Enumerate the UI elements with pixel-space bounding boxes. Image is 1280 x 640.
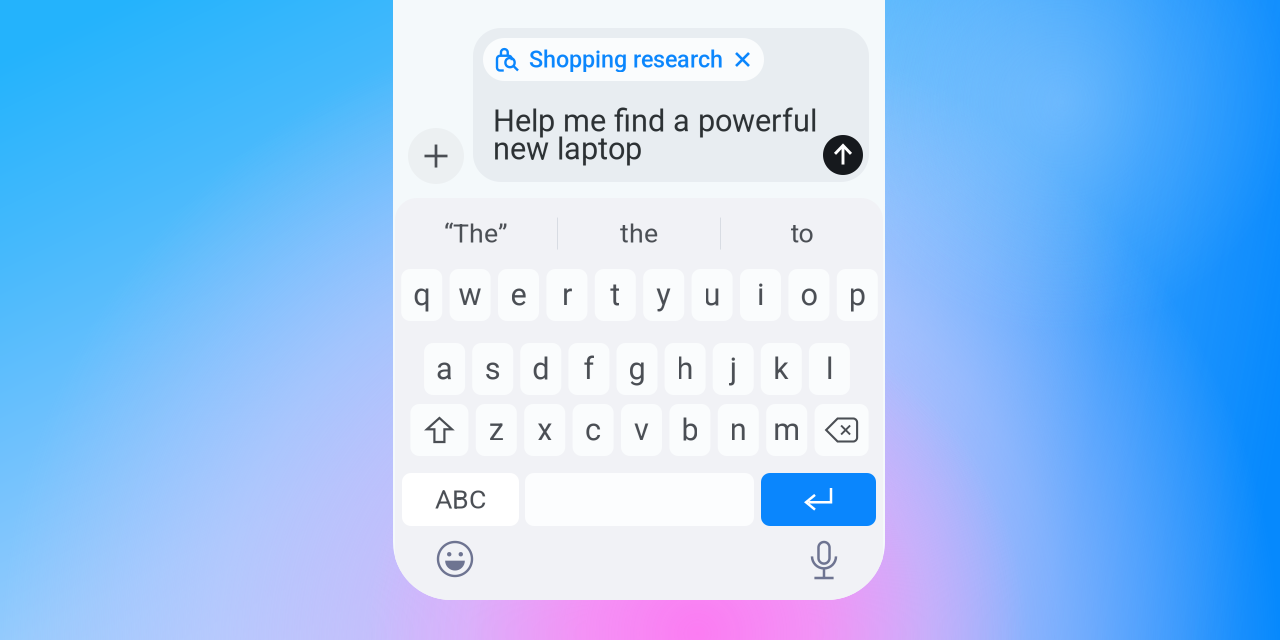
button[interactable]: Shopping research xyxy=(483,38,764,81)
staticText: e xyxy=(510,277,526,313)
button[interactable]: l xyxy=(809,343,850,395)
button[interactable]: s xyxy=(472,343,513,395)
button[interactable]: m xyxy=(766,404,807,456)
staticText: o xyxy=(800,277,817,313)
button[interactable]: e xyxy=(498,269,539,321)
staticText: Shopping research xyxy=(529,46,723,73)
staticText: z xyxy=(489,412,504,448)
staticText: new laptop xyxy=(493,131,642,167)
button[interactable]: f xyxy=(568,343,609,395)
button[interactable]: Delete xyxy=(815,404,869,456)
button[interactable]: the xyxy=(558,198,720,269)
button[interactable]: Add attachment xyxy=(408,128,464,184)
staticText: m xyxy=(773,412,800,448)
staticText: n xyxy=(730,412,747,448)
button[interactable]: z xyxy=(476,404,517,456)
staticText: t xyxy=(610,277,620,313)
button[interactable]: u xyxy=(692,269,733,321)
staticText: q xyxy=(413,277,430,313)
button[interactable]: Return xyxy=(761,473,876,526)
button[interactable]: p xyxy=(837,269,878,321)
staticText: u xyxy=(704,277,721,313)
staticText: to xyxy=(790,218,813,249)
staticText: f xyxy=(583,351,594,387)
button[interactable]: Shift xyxy=(410,404,468,456)
staticText: v xyxy=(634,412,649,448)
staticText: y xyxy=(656,277,671,313)
button[interactable]: x xyxy=(524,404,565,456)
staticText: r xyxy=(562,277,572,313)
button[interactable]: h xyxy=(665,343,706,395)
button[interactable]: d xyxy=(520,343,561,395)
staticText: w xyxy=(459,277,482,313)
staticText: h xyxy=(677,351,694,387)
button[interactable]: i xyxy=(740,269,781,321)
staticText: j xyxy=(730,351,737,387)
staticText: the xyxy=(620,218,658,249)
staticText: l xyxy=(826,351,833,387)
button[interactable]: ABC xyxy=(402,473,519,526)
button[interactable]: w xyxy=(450,269,491,321)
button[interactable]: Emoji xyxy=(438,542,472,576)
staticText: b xyxy=(681,412,698,448)
staticText: a xyxy=(436,351,453,387)
staticText: i xyxy=(757,277,764,313)
button[interactable]: n xyxy=(718,404,759,456)
button[interactable]: to xyxy=(721,198,883,269)
button[interactable]: t xyxy=(595,269,636,321)
button[interactable]: o xyxy=(788,269,829,321)
staticText: c xyxy=(585,412,601,448)
staticText: d xyxy=(532,351,549,387)
button[interactable]: q xyxy=(401,269,442,321)
button[interactable]: r xyxy=(546,269,587,321)
button[interactable]: v xyxy=(621,404,662,456)
staticText: ABC xyxy=(435,484,486,515)
staticText: g xyxy=(628,351,645,387)
button[interactable]: “The” xyxy=(395,198,557,269)
staticText: x xyxy=(537,412,552,448)
button[interactable]: j xyxy=(713,343,754,395)
button[interactable]: Dictate xyxy=(812,542,836,578)
button[interactable]: Send xyxy=(823,135,863,175)
button[interactable]: k xyxy=(761,343,802,395)
button[interactable]: b xyxy=(669,404,710,456)
staticText: Help me find a powerful xyxy=(493,103,817,139)
button[interactable]: g xyxy=(616,343,657,395)
staticText: k xyxy=(773,351,789,387)
button[interactable]: c xyxy=(573,404,614,456)
button[interactable]: a xyxy=(424,343,465,395)
staticText: s xyxy=(485,351,501,387)
staticText: “The” xyxy=(444,218,508,249)
staticText: p xyxy=(849,277,866,313)
button[interactable]: y xyxy=(643,269,684,321)
